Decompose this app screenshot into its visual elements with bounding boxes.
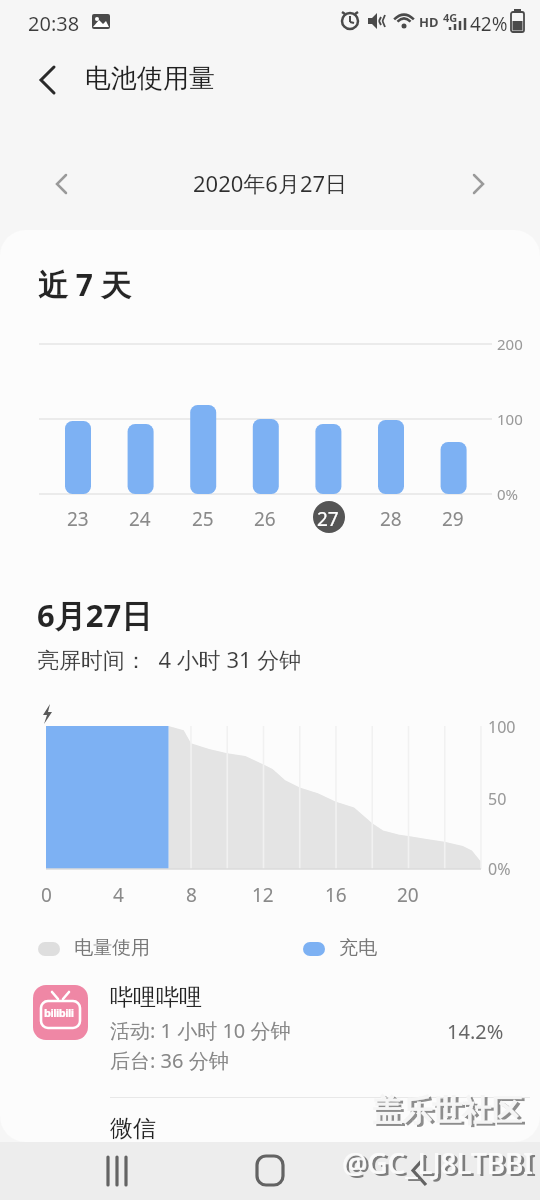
staticText: 24 bbox=[129, 506, 151, 532]
staticText: @GC_LJ8LTBBI bbox=[345, 1146, 537, 1184]
button[interactable] bbox=[90, 1142, 150, 1200]
staticText: 电池使用量 bbox=[85, 62, 215, 95]
button[interactable] bbox=[240, 1142, 300, 1200]
staticText: 14.2% bbox=[447, 1018, 504, 1045]
staticText: bilibili bbox=[44, 1005, 74, 1020]
staticText: 0% bbox=[497, 484, 519, 504]
staticText: 2020年6月27日 bbox=[193, 168, 348, 198]
staticText: 50 bbox=[488, 788, 507, 810]
button[interactable] bbox=[24, 58, 68, 102]
button[interactable] bbox=[40, 162, 84, 206]
staticText: 盖乐世社区 bbox=[372, 1092, 522, 1130]
staticText: 23 bbox=[67, 506, 89, 532]
staticText: 亮屏时间： 4 小时 31 分钟 bbox=[37, 644, 302, 674]
staticText: 4G bbox=[443, 10, 458, 25]
staticText: 20:38 bbox=[28, 10, 80, 37]
staticText: 电量使用 bbox=[74, 936, 150, 960]
staticText: 0% bbox=[488, 858, 511, 880]
staticText: 100 bbox=[488, 716, 516, 738]
staticText: 哔哩哔哩 bbox=[110, 983, 202, 1012]
staticText: 100 bbox=[497, 409, 523, 429]
staticText: 微信 bbox=[110, 1114, 156, 1142]
staticText: 8 bbox=[186, 882, 197, 908]
staticText: 16 bbox=[325, 882, 347, 908]
staticText: 29 bbox=[442, 506, 464, 532]
button[interactable] bbox=[390, 1142, 450, 1200]
staticText: 6月27日 bbox=[37, 594, 153, 636]
staticText: 盖乐世社区 bbox=[375, 1094, 525, 1132]
staticText: 0 bbox=[41, 882, 52, 908]
staticText: 20 bbox=[397, 882, 419, 908]
staticText: 活动: 1 小时 10 分钟 bbox=[110, 1017, 291, 1044]
staticText: 充电 bbox=[339, 936, 377, 960]
staticText: 12 bbox=[252, 882, 274, 908]
button[interactable]: bilibili bbox=[0, 975, 540, 1100]
staticText: 26 bbox=[254, 506, 276, 532]
staticText: HD bbox=[419, 13, 439, 31]
staticText: 27 bbox=[317, 506, 339, 532]
staticText: 后台: 36 分钟 bbox=[110, 1047, 229, 1074]
staticText: 近 7 天 bbox=[38, 264, 131, 305]
staticText: 28 bbox=[380, 506, 402, 532]
staticText: @GC_LJ8LTBBI bbox=[342, 1144, 534, 1182]
button[interactable] bbox=[456, 162, 500, 206]
staticText: 4 bbox=[113, 882, 124, 908]
staticText: 42% bbox=[470, 11, 508, 37]
staticText: 25 bbox=[192, 506, 214, 532]
staticText: 200 bbox=[497, 334, 523, 354]
